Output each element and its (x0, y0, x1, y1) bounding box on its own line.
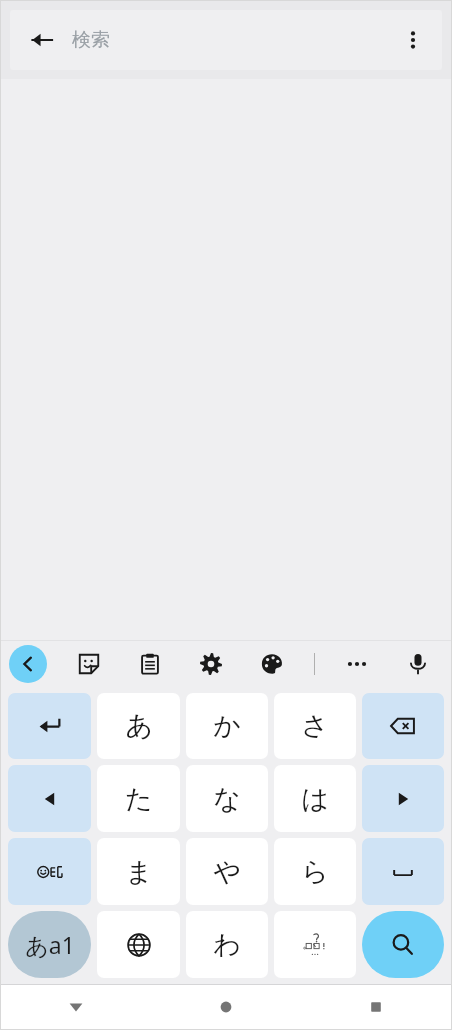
button[interactable]: ら (274, 838, 356, 905)
staticText: や (213, 855, 241, 889)
button[interactable]: Back (20, 18, 64, 62)
button[interactable]: わ (186, 911, 268, 978)
button[interactable]: か (186, 693, 268, 759)
staticText: あa1 (25, 929, 75, 960)
button[interactable]: Recents (301, 985, 451, 1029)
button[interactable]: た (97, 765, 180, 832)
staticText: ら (301, 855, 329, 889)
button[interactable]: Enter (8, 693, 91, 759)
button[interactable]: Cursor right (362, 765, 444, 832)
button[interactable]: Collapse toolbar (9, 645, 47, 683)
staticText: た (125, 782, 153, 816)
button[interactable]: Cursor left (8, 765, 91, 832)
staticText: は (301, 782, 329, 816)
staticText: か (213, 709, 241, 743)
button[interactable]: Switch language (97, 911, 180, 978)
button[interactable]: Voice input (399, 645, 437, 683)
staticText: わ (213, 928, 241, 962)
button[interactable]: Backspace (362, 693, 444, 759)
button[interactable]: More (338, 645, 376, 683)
button[interactable]: Search (362, 911, 444, 978)
button[interactable]: ま (97, 838, 180, 905)
button[interactable]: Stickers (70, 645, 108, 683)
button[interactable]: Emoji and symbols (8, 838, 91, 905)
button[interactable]: Home (151, 985, 301, 1029)
button[interactable]: あ (97, 693, 180, 759)
button[interactable]: Back (1, 985, 151, 1029)
button[interactable]: は (274, 765, 356, 832)
staticText: さ (301, 709, 329, 743)
button[interactable]: な (186, 765, 268, 832)
button[interactable]: さ (274, 693, 356, 759)
button[interactable]: More options (390, 17, 436, 63)
button[interactable]: Space (362, 838, 444, 905)
button[interactable]: あa1 (8, 911, 91, 978)
staticText: ま (125, 855, 153, 889)
staticText: な (213, 782, 241, 816)
button[interactable]: Themes (253, 645, 291, 683)
button[interactable]: Settings (192, 645, 230, 683)
button[interactable]: や (186, 838, 268, 905)
button[interactable]: Clipboard (131, 645, 169, 683)
staticText: あ (125, 709, 153, 743)
staticText: 検索 (72, 28, 110, 52)
button[interactable]: Punctuation (274, 911, 356, 978)
